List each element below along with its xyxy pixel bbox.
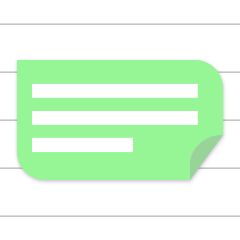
button[interactable]: Note bbox=[0, 0, 240, 240]
